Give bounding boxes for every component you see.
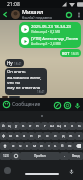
button[interactable]: х — [69, 122, 76, 130]
button[interactable]: л — [51, 132, 59, 140]
button[interactable]: д — [59, 132, 67, 140]
button[interactable]: б — [59, 142, 66, 150]
button[interactable]: ъ — [76, 122, 83, 130]
staticText: б — [61, 143, 64, 149]
staticText: Video.mp4 • 8,2 MB — [31, 30, 61, 34]
staticText: Он опять жаловался жене, что ты ему не о… — [7, 69, 45, 90]
button[interactable]: у — [13, 122, 20, 130]
staticText: п — [30, 133, 33, 139]
button[interactable]: ф — [0, 132, 7, 140]
staticText: ф — [2, 133, 6, 139]
staticText: ъ — [78, 123, 81, 129]
staticText: Ввод — [72, 154, 80, 158]
staticText: Ну — [7, 60, 13, 66]
button[interactable]: ч — [17, 142, 24, 150]
button[interactable]: й — [0, 122, 6, 130]
button[interactable]: Attach — [52, 100, 62, 110]
staticText: . — [64, 153, 66, 159]
button[interactable]: Back — [0, 9, 11, 20]
button[interactable]: ц — [6, 122, 13, 130]
staticText: ж — [69, 133, 73, 139]
button[interactable]: Ну — [5, 59, 24, 67]
button[interactable]: . — [60, 152, 69, 160]
button[interactable]: к — [20, 122, 27, 130]
button[interactable]: г — [41, 122, 48, 130]
staticText: ы — [9, 133, 13, 139]
staticText: Audio.mp3 • 2,4 MB — [31, 42, 61, 46]
button[interactable]: More options — [74, 10, 83, 19]
button[interactable]: е — [27, 122, 34, 130]
button[interactable]: Пробел — [20, 152, 60, 160]
staticText: я — [12, 143, 15, 149]
button[interactable]: ш — [48, 122, 55, 130]
staticText: г — [44, 123, 46, 129]
button[interactable]: щ — [55, 122, 62, 130]
staticText: [УТВ] Александр_Лосев — [31, 36, 78, 42]
button[interactable]: э — [75, 132, 83, 140]
staticText: л — [54, 133, 57, 139]
staticText: э — [78, 133, 81, 139]
button[interactable]: ю — [66, 142, 73, 150]
button[interactable]: з — [62, 122, 69, 130]
staticText: м — [33, 143, 37, 149]
staticText: с — [26, 143, 29, 149]
button[interactable]: а — [21, 132, 28, 140]
staticText: ч — [19, 143, 22, 149]
button[interactable]: Emoji — [1, 99, 12, 110]
staticText: д — [62, 133, 65, 139]
staticText: был(а) недавно — [22, 15, 52, 20]
staticText: т — [48, 143, 50, 149]
button[interactable]: ж — [67, 132, 75, 140]
button[interactable] — [11, 152, 20, 160]
staticText: щ — [57, 123, 61, 129]
staticText: ю — [68, 143, 72, 149]
button[interactable]: п — [28, 132, 35, 140]
button[interactable]: Ввод — [69, 152, 83, 160]
button[interactable]: о — [43, 132, 51, 140]
staticText: 123 — [3, 154, 9, 158]
button[interactable]: и — [38, 142, 45, 150]
button[interactable]: с — [24, 142, 31, 150]
staticText: й — [2, 123, 5, 129]
button[interactable]: р — [35, 132, 43, 140]
button[interactable] — [0, 142, 10, 150]
staticText: е — [29, 123, 32, 129]
staticText: Михаил Журавлев — [22, 8, 63, 15]
button[interactable]: в — [14, 132, 21, 140]
staticText: к — [22, 123, 25, 129]
staticText: ш — [50, 123, 54, 129]
staticText: 2025-05-23 18-34-23 — [31, 24, 72, 30]
button[interactable]: 123 — [0, 152, 11, 160]
button[interactable]: вот — [60, 49, 81, 57]
button[interactable]: Call — [63, 9, 74, 20]
button[interactable]: м — [31, 142, 38, 150]
staticText: Сообщение — [12, 101, 52, 108]
staticText: а — [23, 133, 26, 139]
button[interactable]: ы — [7, 132, 14, 140]
button[interactable]: 1 — [9, 96, 20, 98]
button[interactable]: т — [45, 142, 52, 150]
staticText: у — [15, 123, 18, 129]
staticText: вот — [62, 50, 70, 56]
staticText: 18:35 — [71, 52, 79, 56]
button[interactable]: я — [10, 142, 17, 150]
button[interactable]: Он опять жаловался жене, что ты ему не о… — [5, 68, 47, 95]
staticText: Пробел — [34, 154, 46, 158]
staticText: р — [38, 133, 41, 139]
button[interactable]: 2025-05-23 18-34-23 — [19, 22, 81, 48]
staticText: в — [16, 133, 19, 139]
button[interactable] — [73, 142, 83, 150]
button[interactable]: Keyboard settings — [4, 167, 11, 174]
staticText: ц — [8, 123, 11, 129]
button[interactable]: Voice message — [72, 100, 82, 110]
staticText: х — [71, 123, 74, 129]
staticText: о — [46, 133, 49, 139]
staticText: з — [64, 123, 67, 129]
button[interactable]: Camera — [62, 100, 72, 110]
staticText: н — [36, 123, 39, 129]
button[interactable]: ь — [52, 142, 59, 150]
button[interactable]: н — [34, 122, 41, 130]
staticText: и — [40, 143, 43, 149]
button[interactable]: Voice input — [67, 167, 75, 175]
staticText: 21:08 — [7, 1, 20, 8]
